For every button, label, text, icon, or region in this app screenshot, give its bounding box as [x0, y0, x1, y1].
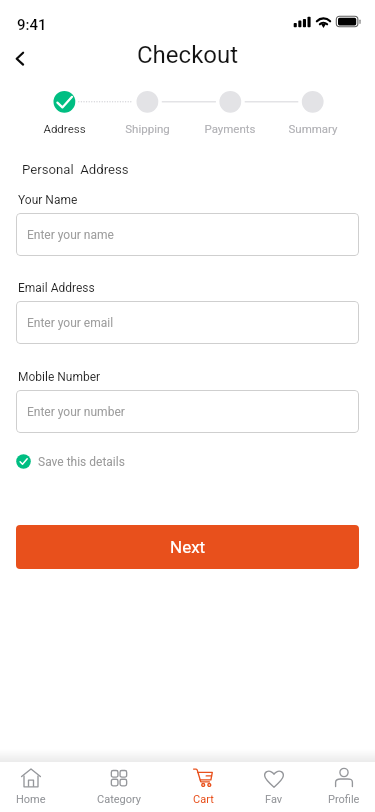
button[interactable]: Back [2, 41, 37, 76]
button[interactable]: Payments [190, 122, 270, 135]
staticText: Shipping [125, 122, 170, 135]
staticText: Next [170, 537, 206, 557]
staticText: Enter your number [27, 405, 125, 419]
staticText: Checkout [137, 41, 239, 69]
staticText: Address [43, 122, 86, 135]
staticText: Profile [328, 793, 360, 806]
button[interactable]: Home [0, 762, 65, 812]
button[interactable]: Summary [273, 122, 353, 135]
staticText: 9:41 [17, 16, 47, 34]
staticText: Enter your name [27, 228, 114, 242]
staticText: Payments [204, 122, 256, 135]
staticText: Personal Address [22, 162, 129, 177]
button[interactable]: Save this details [16, 454, 125, 469]
button[interactable]: Enter your number [16, 390, 359, 433]
staticText: Home [16, 793, 46, 806]
staticText: Mobile Number [18, 370, 101, 384]
staticText: Save this details [38, 455, 125, 469]
staticText: Summary [288, 122, 338, 135]
staticText: Category [97, 793, 142, 806]
staticText: Fav [265, 793, 283, 806]
staticText: Cart [193, 793, 214, 806]
button[interactable]: Enter your email [16, 301, 359, 344]
button[interactable]: Next [16, 525, 359, 569]
button[interactable]: Fav [240, 762, 308, 812]
button[interactable]: Profile [310, 762, 375, 812]
button[interactable]: Shipping [107, 122, 187, 135]
button[interactable]: Address [24, 122, 104, 135]
staticText: Your Name [18, 193, 78, 207]
staticText: Enter your email [27, 316, 114, 330]
button[interactable]: Cart [169, 762, 237, 812]
button[interactable]: Enter your name [16, 213, 359, 256]
staticText: Email Address [18, 281, 95, 295]
button[interactable]: Category [85, 762, 153, 812]
